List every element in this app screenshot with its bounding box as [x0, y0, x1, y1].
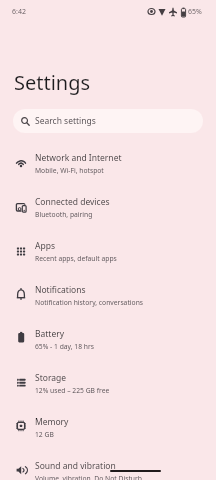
staticText: Search settings	[35, 115, 96, 127]
staticText: Battery	[35, 328, 65, 340]
button[interactable]: Connected devices	[0, 185, 216, 229]
button[interactable]: Memory	[0, 405, 216, 449]
button[interactable]: Network and Internet	[0, 141, 216, 185]
staticText: Bluetooth, pairing	[35, 210, 93, 219]
staticText: Memory	[35, 416, 69, 428]
staticText: Sound and vibration	[35, 460, 116, 472]
staticText: 6:42	[12, 7, 26, 17]
staticText: 12 GB	[35, 430, 54, 439]
staticText: 12% used – 225 GB free	[35, 386, 110, 395]
staticText: Volume, vibration, Do Not Disturb	[35, 474, 142, 480]
staticText: 65%	[188, 7, 202, 17]
button[interactable]: Sound and vibration	[0, 449, 216, 480]
button[interactable]: Battery	[0, 317, 216, 361]
button[interactable]: Notifications	[0, 273, 216, 317]
staticText: Network and Internet	[35, 152, 122, 164]
staticText: Storage	[35, 372, 67, 384]
staticText: Notifications	[35, 284, 86, 296]
button[interactable]: Apps	[0, 229, 216, 273]
staticText: Recent apps, default apps	[35, 254, 117, 263]
button[interactable]: Storage	[0, 361, 216, 405]
staticText: Settings	[14, 69, 91, 96]
staticText: Mobile, Wi-Fi, hotspot	[35, 166, 104, 175]
button[interactable]: Search settings	[13, 109, 203, 133]
staticText: 65% - 1 day, 18 hrs	[35, 342, 94, 351]
staticText: Apps	[35, 240, 55, 252]
staticText: Notification history, conversations	[35, 298, 144, 307]
staticText: Connected devices	[35, 196, 110, 208]
